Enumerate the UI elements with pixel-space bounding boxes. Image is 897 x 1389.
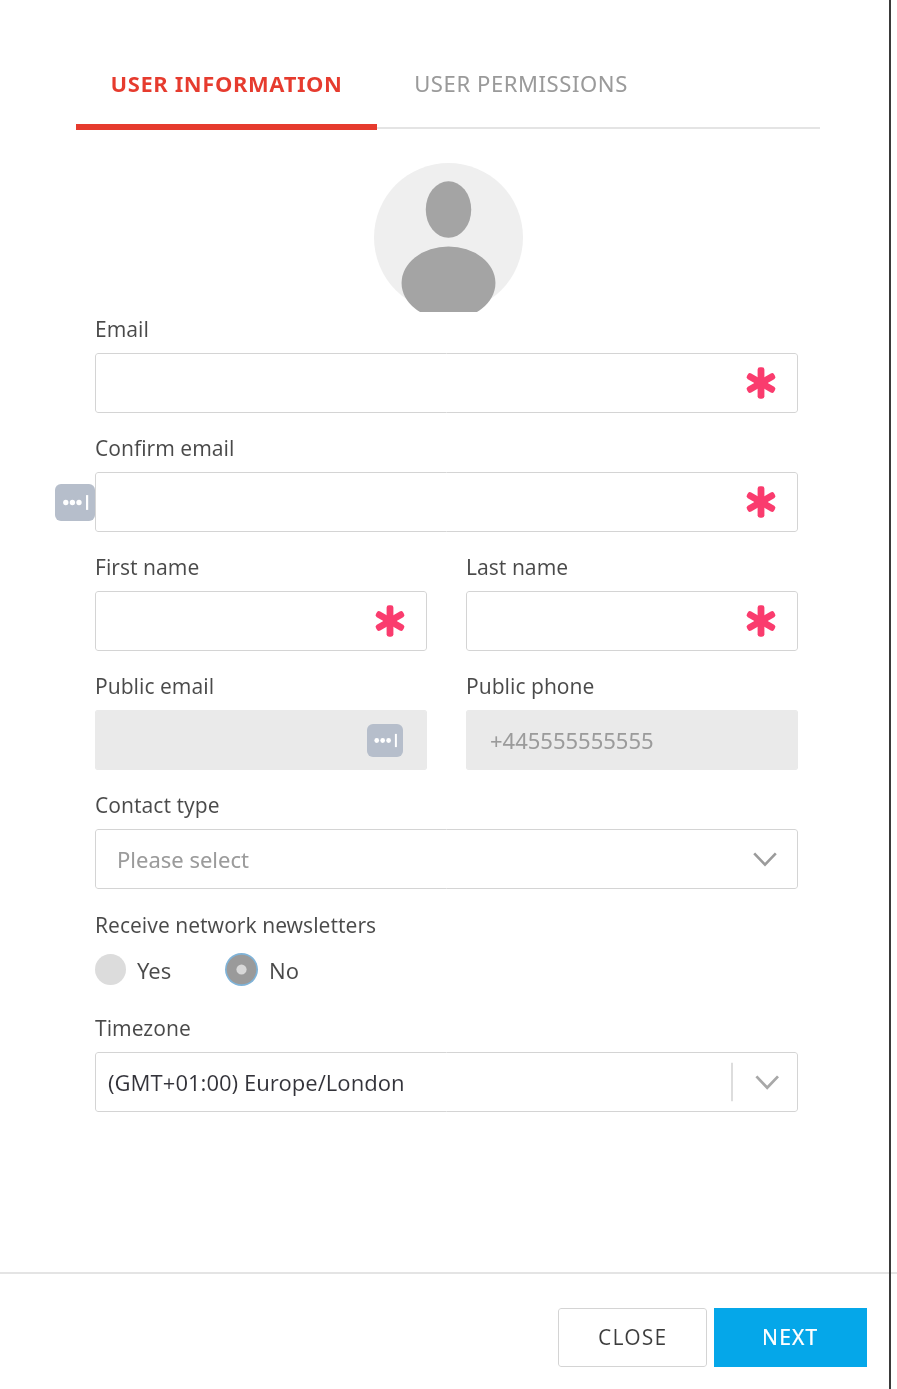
staticText: CLOSE xyxy=(598,1323,668,1352)
button[interactable]: CLOSE xyxy=(558,1308,707,1367)
button[interactable]: No xyxy=(225,953,300,986)
button[interactable]: Yes xyxy=(95,954,172,985)
staticText: (GMT+01:00) Europe/London xyxy=(108,1067,405,1097)
button[interactable]: USER INFORMATION xyxy=(76,0,376,131)
staticText: Yes xyxy=(137,955,172,985)
button[interactable]: More options xyxy=(95,710,427,770)
button[interactable]: (GMT+01:00) Europe/London xyxy=(95,1052,798,1112)
button[interactable]: Please select xyxy=(95,829,798,889)
staticText: +445555555555 xyxy=(490,725,654,755)
staticText: Public phone xyxy=(466,672,595,701)
button[interactable]: More options xyxy=(367,724,403,757)
button[interactable] xyxy=(466,591,798,651)
staticText: No xyxy=(269,955,300,985)
staticText: Public email xyxy=(95,672,215,701)
staticText: Last name xyxy=(466,553,569,582)
staticText: Please select xyxy=(117,844,249,874)
button[interactable]: USER PERMISSIONS xyxy=(376,0,666,131)
staticText: USER PERMISSIONS xyxy=(414,68,628,98)
button[interactable]: NEXT xyxy=(714,1308,867,1367)
staticText: Contact type xyxy=(95,791,220,820)
staticText: Timezone xyxy=(95,1014,191,1043)
button[interactable]: +445555555555 xyxy=(466,710,798,770)
staticText: Receive network newsletters xyxy=(95,911,377,940)
staticText: Email xyxy=(95,315,149,344)
button[interactable]: Profile photo xyxy=(374,163,523,312)
button[interactable] xyxy=(95,472,798,532)
button[interactable] xyxy=(95,591,427,651)
button[interactable] xyxy=(95,353,798,413)
staticText: NEXT xyxy=(762,1323,819,1352)
staticText: USER INFORMATION xyxy=(110,68,343,98)
staticText: First name xyxy=(95,553,200,582)
staticText: Confirm email xyxy=(95,434,235,463)
button[interactable]: More options xyxy=(55,484,95,521)
